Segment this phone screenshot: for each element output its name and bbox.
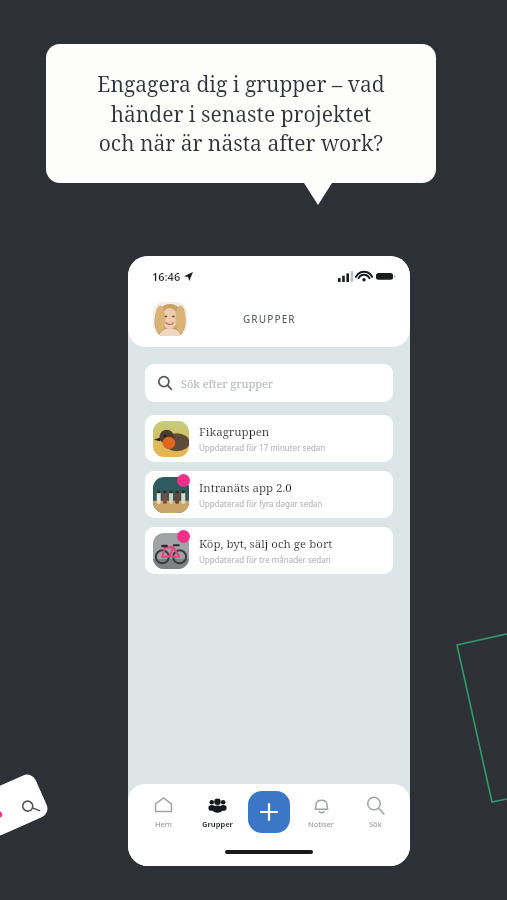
staticText: Uppdaterad för fyra dagar sedan <box>199 498 323 509</box>
button[interactable]: Skapa nytt <box>248 791 290 833</box>
button[interactable]: Grupper <box>194 794 240 831</box>
staticText: Grupper <box>202 819 233 829</box>
staticText: Sök efter grupper <box>181 376 274 391</box>
button[interactable]: Notiser <box>298 794 344 831</box>
button[interactable]: Profil <box>153 302 187 336</box>
staticText: GRUPPER <box>243 312 296 326</box>
staticText: Köp, byt, sälj och ge bort <box>199 536 333 552</box>
button[interactable]: Köp, byt, sälj och ge bort <box>145 527 393 574</box>
staticText: Fikagruppen <box>199 424 270 440</box>
button[interactable]: Fikagruppen <box>145 415 393 462</box>
staticText: Engagera dig i grupper – vad händer i se… <box>97 70 385 157</box>
button[interactable]: Sök efter grupper <box>145 364 393 402</box>
button[interactable]: Hem <box>140 794 186 831</box>
staticText: Sök <box>369 819 382 829</box>
staticText: Uppdaterad för tre månader sedan <box>199 554 331 565</box>
staticText: Intranäts app 2.0 <box>199 480 292 496</box>
staticText: 16:46 <box>152 269 181 284</box>
button[interactable]: Sök <box>352 794 398 831</box>
staticText: Notiser <box>308 819 334 829</box>
staticText: Uppdaterad för 17 minuter sedan <box>199 442 326 453</box>
staticText: Hem <box>155 819 172 829</box>
button[interactable]: Intranäts app 2.0 <box>145 471 393 518</box>
